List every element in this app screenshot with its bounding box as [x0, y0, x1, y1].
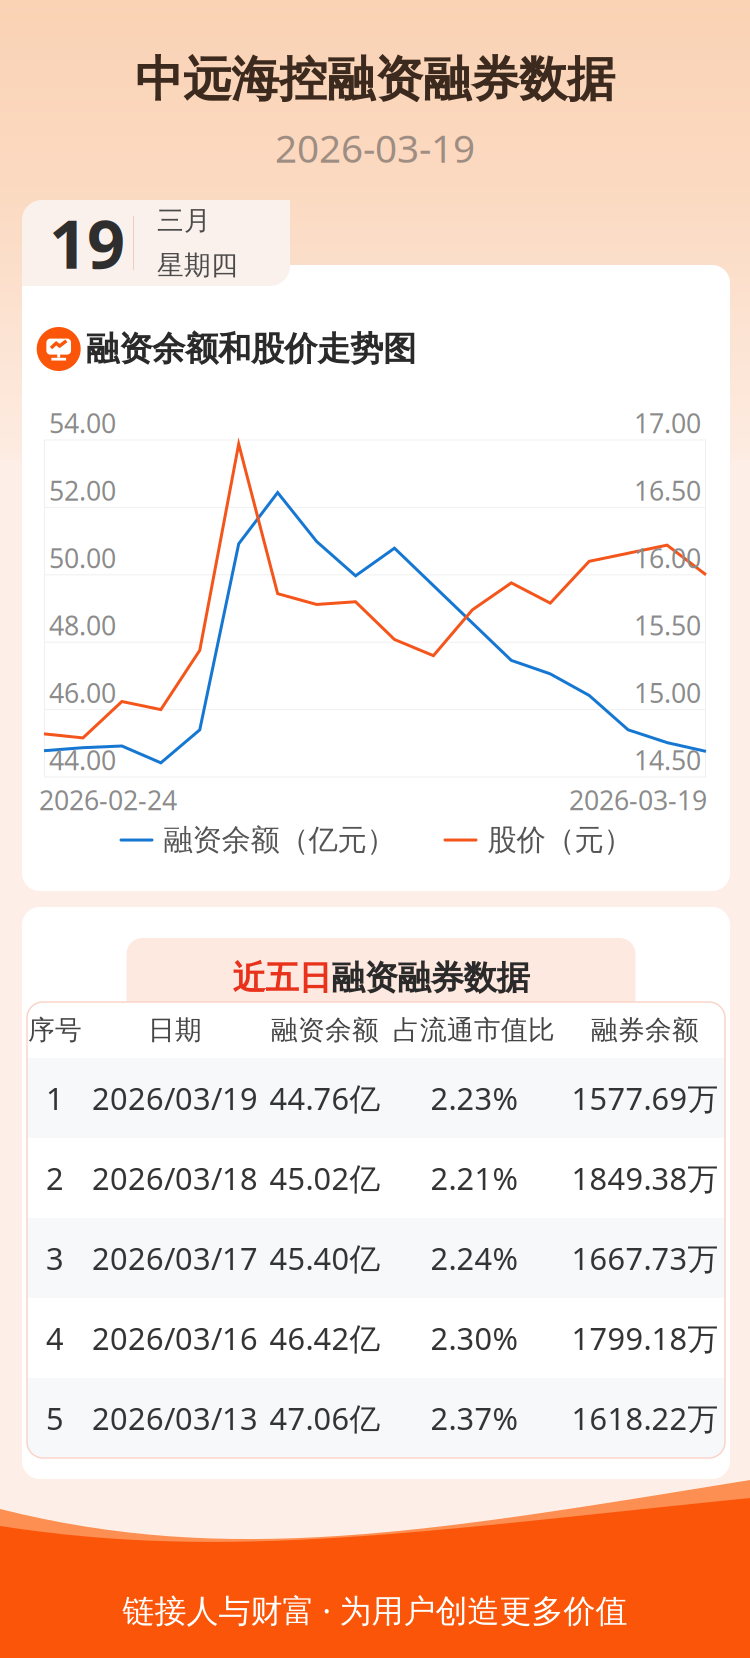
staticText: 2.30% — [430, 1318, 517, 1358]
staticText: 1799.18万 — [571, 1318, 718, 1358]
staticText: 2.24% — [430, 1238, 517, 1278]
staticText: 2026-02-24 — [39, 782, 177, 818]
staticText: 45.40亿 — [269, 1238, 380, 1278]
staticText: 2026/03/16 — [92, 1318, 258, 1358]
staticText: 44.00 — [49, 742, 116, 778]
staticText: 4 — [46, 1318, 64, 1358]
staticText: 链接人与财富 · 为用户创造更多价值 — [122, 1589, 627, 1631]
staticText: 中远海控融资融券数据 — [135, 50, 615, 109]
staticText: 1618.22万 — [571, 1398, 718, 1438]
staticText: 2.37% — [430, 1398, 517, 1438]
staticText: 1849.38万 — [571, 1158, 718, 1198]
staticText: 融资余额（亿元） — [163, 822, 395, 858]
staticText: 47.06亿 — [269, 1398, 380, 1438]
staticText: 15.00 — [634, 675, 701, 710]
staticText: 融资融券数据 — [331, 957, 529, 998]
staticText: 1 — [46, 1078, 64, 1118]
staticText: 54.00 — [49, 405, 116, 441]
staticText: 50.00 — [49, 540, 116, 575]
staticText: 1667.73万 — [571, 1238, 718, 1278]
staticText: 45.02亿 — [269, 1158, 380, 1198]
staticText: 融资余额和股价走势图 — [86, 328, 416, 369]
staticText: 3 — [46, 1238, 64, 1278]
staticText: 序号 — [28, 1014, 82, 1046]
staticText: 44.76亿 — [269, 1078, 380, 1118]
staticText: 1577.69万 — [571, 1078, 718, 1118]
staticText: 2.21% — [430, 1158, 517, 1198]
staticText: 14.50 — [634, 742, 701, 778]
staticText: 2026/03/18 — [92, 1158, 258, 1198]
staticText: 2026/03/19 — [92, 1078, 258, 1118]
staticText: 17.00 — [634, 405, 701, 441]
staticText: 2026/03/17 — [92, 1238, 258, 1278]
staticText: 星期四 — [157, 249, 238, 282]
staticText: 融资余额 — [271, 1014, 379, 1046]
staticText: 52.00 — [49, 473, 116, 508]
staticText: 48.00 — [49, 607, 116, 643]
staticText: 融券余额 — [591, 1014, 699, 1046]
staticText: 日期 — [148, 1014, 202, 1046]
staticText: 16.00 — [634, 540, 701, 575]
staticText: 三月 — [157, 204, 211, 237]
staticText: 2 — [46, 1158, 64, 1198]
staticText: 5 — [46, 1398, 64, 1438]
staticText: 46.00 — [49, 675, 116, 710]
staticText: 近五日 — [232, 957, 331, 998]
staticText: 16.50 — [634, 473, 701, 508]
staticText: 占流通市值比 — [393, 1014, 555, 1046]
staticText: 股价（元） — [487, 822, 632, 858]
staticText: 2026-03-19 — [569, 782, 707, 818]
staticText: 2026/03/13 — [92, 1398, 258, 1438]
staticText: 15.50 — [634, 607, 701, 643]
staticText: 19 — [49, 199, 125, 287]
staticText: 2.23% — [430, 1078, 517, 1118]
staticText: 46.42亿 — [269, 1318, 380, 1358]
staticText: 2026-03-19 — [275, 122, 475, 173]
